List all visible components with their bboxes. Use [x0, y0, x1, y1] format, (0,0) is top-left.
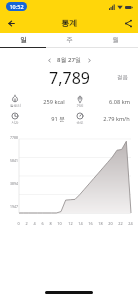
staticText: 4: [33, 221, 36, 226]
staticText: 3894: [10, 181, 18, 186]
staticText: 12: [68, 221, 73, 226]
staticText: 24: [128, 221, 133, 226]
staticText: 6: [41, 221, 44, 226]
staticText: 시간: [11, 121, 19, 126]
button[interactable]: Previous day: [44, 55, 54, 65]
staticText: 통계: [61, 18, 77, 28]
staticText: 거리: [76, 104, 84, 109]
staticText: 18: [98, 221, 103, 226]
button[interactable]: Share: [118, 13, 138, 33]
staticText: 칼로리: [10, 104, 21, 109]
staticText: 걸음: [117, 74, 128, 81]
button[interactable]: 칼로리: [4, 93, 69, 110]
staticText: 91 분: [51, 115, 65, 123]
button[interactable]: 주: [46, 33, 92, 47]
staticText: 속도: [76, 121, 84, 126]
button[interactable]: Back: [0, 13, 20, 33]
button[interactable]: 월: [92, 33, 138, 47]
staticText: 10:52: [9, 3, 24, 10]
staticText: 주: [66, 36, 73, 44]
staticText: 2.79 km/h: [103, 115, 130, 123]
staticText: 1947: [10, 204, 18, 209]
staticText: 5841: [10, 158, 18, 163]
button[interactable]: 일: [0, 33, 46, 47]
staticText: 7,789: [49, 67, 90, 87]
staticText: 7788: [10, 135, 18, 140]
staticText: 22: [118, 221, 123, 226]
staticText: 일: [20, 36, 27, 44]
staticText: 0: [17, 221, 20, 226]
staticText: 20: [108, 221, 113, 226]
staticText: 6.08 km: [109, 98, 130, 106]
staticText: 8월 27일: [57, 56, 81, 64]
staticText: 8: [49, 221, 52, 226]
staticText: 10: [57, 221, 62, 226]
staticText: 259 kcal: [43, 98, 65, 106]
button[interactable]: Next day: [84, 55, 94, 65]
staticText: 월: [112, 36, 119, 44]
staticText: 2: [25, 221, 28, 226]
staticText: 14: [78, 221, 83, 226]
button[interactable]: 거리: [69, 93, 134, 110]
button[interactable]: 속도: [69, 110, 134, 127]
button[interactable]: 시간: [4, 110, 69, 127]
staticText: 16: [88, 221, 93, 226]
